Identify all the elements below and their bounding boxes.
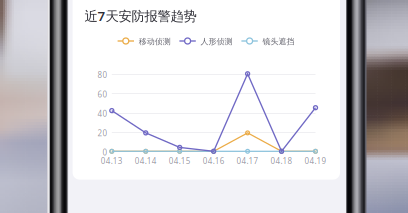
- staticText: 04.13: [101, 156, 123, 166]
- staticText: 移动侦测: [139, 37, 171, 46]
- staticText: 近7天安防报警趋势: [85, 7, 197, 25]
- staticText: 0: [103, 147, 108, 158]
- button[interactable]: 人形侦测: [0, 0, 408, 213]
- staticText: 04.19: [304, 156, 326, 166]
- staticText: 04.16: [203, 156, 225, 166]
- staticText: 80: [98, 70, 108, 80]
- staticText: 人形侦测: [201, 37, 233, 46]
- staticText: 20: [98, 128, 108, 138]
- staticText: 04.15: [169, 156, 191, 166]
- staticText: 镜头遮挡: [263, 37, 295, 46]
- staticText: 60: [98, 89, 108, 100]
- button[interactable]: 镜头遮挡: [0, 0, 408, 213]
- staticText: 04.18: [271, 156, 293, 166]
- staticText: 40: [98, 108, 108, 119]
- staticText: 04.14: [135, 156, 157, 166]
- button[interactable]: 移动侦测: [0, 0, 408, 213]
- staticText: 04.17: [237, 156, 259, 166]
